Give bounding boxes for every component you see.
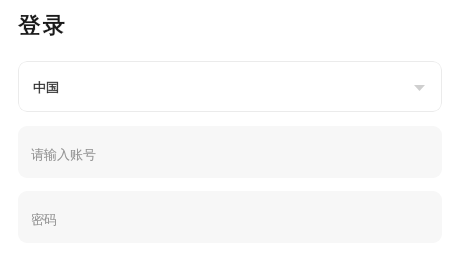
staticText: 中国 [33,79,59,95]
staticText: 中国 [33,79,59,95]
staticText: 请输入账号 [31,146,96,162]
other: Select country [414,85,425,91]
staticText: 密码 [31,211,57,227]
button[interactable]: 请输入账号 [18,126,442,178]
button[interactable]: 密码 [18,191,442,243]
button[interactable]: 中国 [18,61,442,112]
staticText: 登录 [18,12,67,40]
